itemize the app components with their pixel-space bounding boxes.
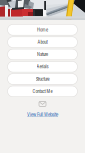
staticText: Home — [37, 27, 48, 33]
button[interactable]: Home — [8, 24, 77, 35]
button[interactable]: About — [8, 37, 77, 47]
button[interactable]: Aerials — [8, 61, 77, 72]
button[interactable]: Structure — [8, 74, 77, 84]
staticText: Aerials — [36, 64, 48, 69]
button[interactable]: Email — [38, 101, 47, 107]
staticText: About — [37, 39, 47, 45]
staticText: Contact Me — [32, 89, 52, 94]
staticText: View Full Website — [27, 112, 58, 117]
button[interactable]: Contact Me — [8, 86, 77, 97]
button[interactable]: View Full Website — [27, 111, 58, 117]
staticText: Nature — [37, 52, 48, 57]
button[interactable]: Nature — [8, 49, 77, 60]
staticText: Structure — [35, 76, 49, 82]
